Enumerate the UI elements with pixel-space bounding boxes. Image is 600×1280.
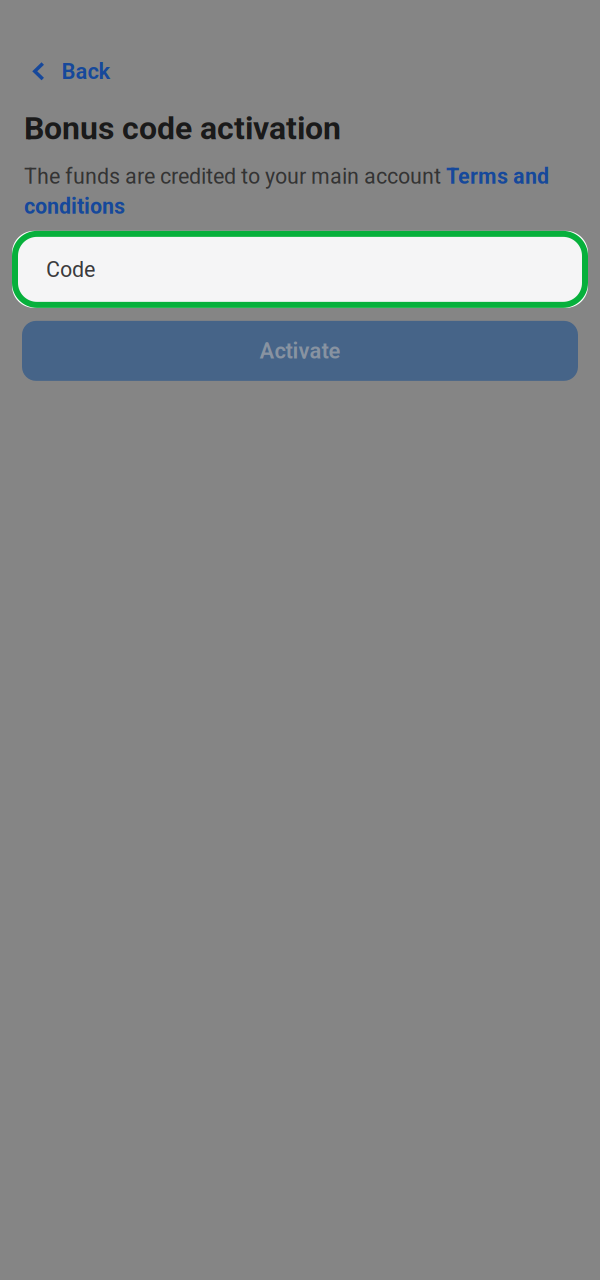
staticText: Activate: [259, 338, 340, 364]
staticText: Back: [61, 58, 110, 85]
staticText: The funds are credited to your main acco…: [24, 163, 549, 219]
staticText: Code: [46, 256, 95, 283]
staticText: Bonus code activation: [24, 110, 341, 147]
button[interactable]: Back: [0, 51, 126, 92]
button[interactable]: Activate: [22, 321, 578, 381]
button[interactable]: Code: [12, 231, 588, 308]
